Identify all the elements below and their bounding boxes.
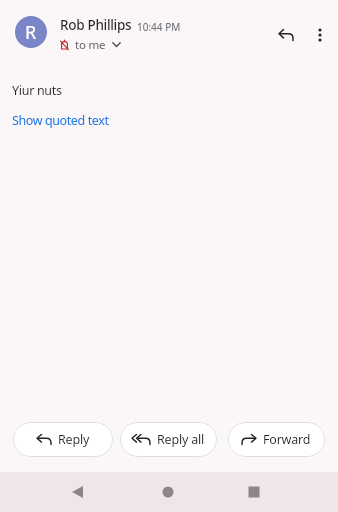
staticText: R — [25, 20, 37, 45]
staticText: Forward — [263, 431, 311, 448]
button[interactable] — [156, 480, 180, 504]
staticText: Reply — [58, 431, 90, 448]
button[interactable]: Reply all — [120, 422, 217, 457]
button[interactable]: R — [15, 16, 47, 48]
button[interactable]: Reply — [13, 422, 113, 457]
staticText: Reply all — [157, 431, 205, 448]
staticText: Rob Phillips — [60, 16, 132, 34]
staticText: to me — [75, 37, 106, 53]
button[interactable]: Forward — [228, 422, 325, 457]
staticText: 10:44 PM — [137, 20, 181, 34]
button[interactable] — [65, 480, 89, 504]
button[interactable]: to me — [59, 37, 121, 53]
button[interactable] — [305, 20, 335, 50]
staticText: Yiur nuts — [12, 82, 62, 99]
button[interactable] — [242, 480, 266, 504]
button[interactable]: Show quoted text — [12, 112, 109, 129]
button[interactable] — [271, 20, 301, 50]
